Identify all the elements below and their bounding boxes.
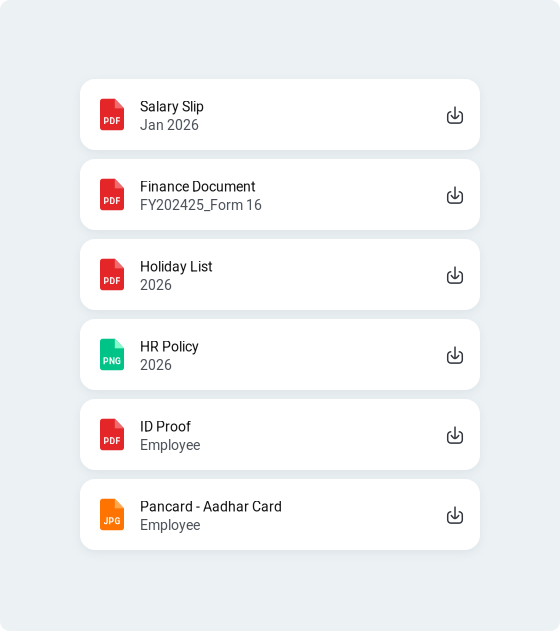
- staticText: 2026: [140, 357, 172, 373]
- staticText: JPG: [103, 516, 120, 526]
- button[interactable]: PDF: [80, 79, 480, 150]
- staticText: PDF: [103, 276, 120, 286]
- staticText: Salary Slip: [140, 99, 204, 115]
- button[interactable]: PDF: [80, 239, 480, 310]
- staticText: Jan 2026: [140, 117, 199, 133]
- button[interactable]: Download Holiday List: [442, 259, 468, 289]
- staticText: PDF: [103, 196, 120, 206]
- staticText: Pancard - Aadhar Card: [140, 499, 282, 515]
- staticText: PDF: [103, 116, 120, 126]
- staticText: ID Proof: [140, 419, 191, 435]
- button[interactable]: PDF: [80, 159, 480, 230]
- button[interactable]: Download Pancard - Aadhar Card: [442, 499, 468, 529]
- button[interactable]: JPG: [80, 479, 480, 550]
- staticText: Employee: [140, 437, 200, 453]
- button[interactable]: Download Salary Slip: [442, 99, 468, 129]
- staticText: PDF: [103, 436, 120, 446]
- staticText: FY202425_Form 16: [140, 197, 262, 213]
- button[interactable]: PNG: [80, 319, 480, 390]
- staticText: Holiday List: [140, 259, 213, 275]
- button[interactable]: PDF: [80, 399, 480, 470]
- button[interactable]: Download Finance Document: [442, 179, 468, 209]
- staticText: Finance Document: [140, 179, 256, 195]
- staticText: 2026: [140, 277, 172, 293]
- staticText: Employee: [140, 517, 200, 533]
- button[interactable]: Download ID Proof: [442, 419, 468, 449]
- staticText: PNG: [103, 356, 121, 366]
- button[interactable]: Download HR Policy: [442, 339, 468, 369]
- staticText: HR Policy: [140, 339, 199, 355]
